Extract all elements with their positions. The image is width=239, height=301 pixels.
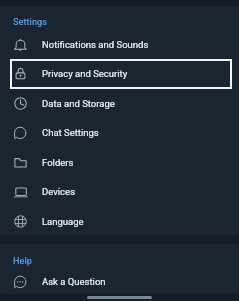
staticText: Data and Storage (42, 98, 115, 109)
staticText: Devices (42, 186, 76, 197)
staticText: Folders (42, 157, 74, 168)
staticText: Privacy and Security (42, 68, 128, 79)
button[interactable]: Folders (10, 147, 232, 177)
staticText: Language (42, 216, 84, 227)
button[interactable]: Ask a Question (10, 266, 232, 296)
button[interactable]: Data and Storage (10, 88, 232, 118)
staticText: Chat Settings (42, 127, 99, 138)
staticText: Notifications and Sounds (42, 39, 149, 50)
button[interactable]: Devices (10, 176, 232, 206)
staticText: Ask a Question (42, 276, 106, 287)
button[interactable]: Language (10, 206, 232, 236)
staticText: Help (13, 255, 32, 266)
button[interactable]: Chat Settings (10, 117, 232, 147)
staticText: Settings (13, 16, 47, 27)
button[interactable]: Notifications and Sounds (10, 29, 232, 59)
button[interactable]: Privacy and Security (10, 58, 232, 88)
